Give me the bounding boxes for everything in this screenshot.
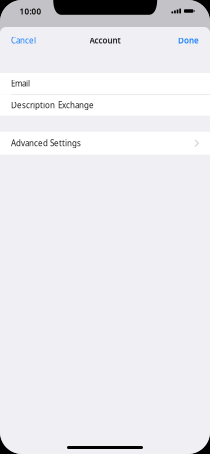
staticText: Cancel — [11, 35, 36, 46]
button[interactable]: Done — [167, 27, 210, 54]
staticText: Description — [11, 100, 55, 110]
staticText: 10:00 — [20, 6, 42, 17]
staticText: Done — [178, 35, 199, 46]
button[interactable]: Description — [0, 95, 210, 116]
staticText: Account — [89, 35, 120, 46]
staticText: Email — [11, 78, 30, 89]
button[interactable]: Cancel — [0, 27, 47, 54]
staticText: Advanced Settings — [11, 138, 81, 148]
button[interactable]: Email — [0, 73, 210, 94]
button[interactable]: Advanced Settings — [0, 132, 210, 155]
staticText: Exchange — [58, 100, 94, 110]
